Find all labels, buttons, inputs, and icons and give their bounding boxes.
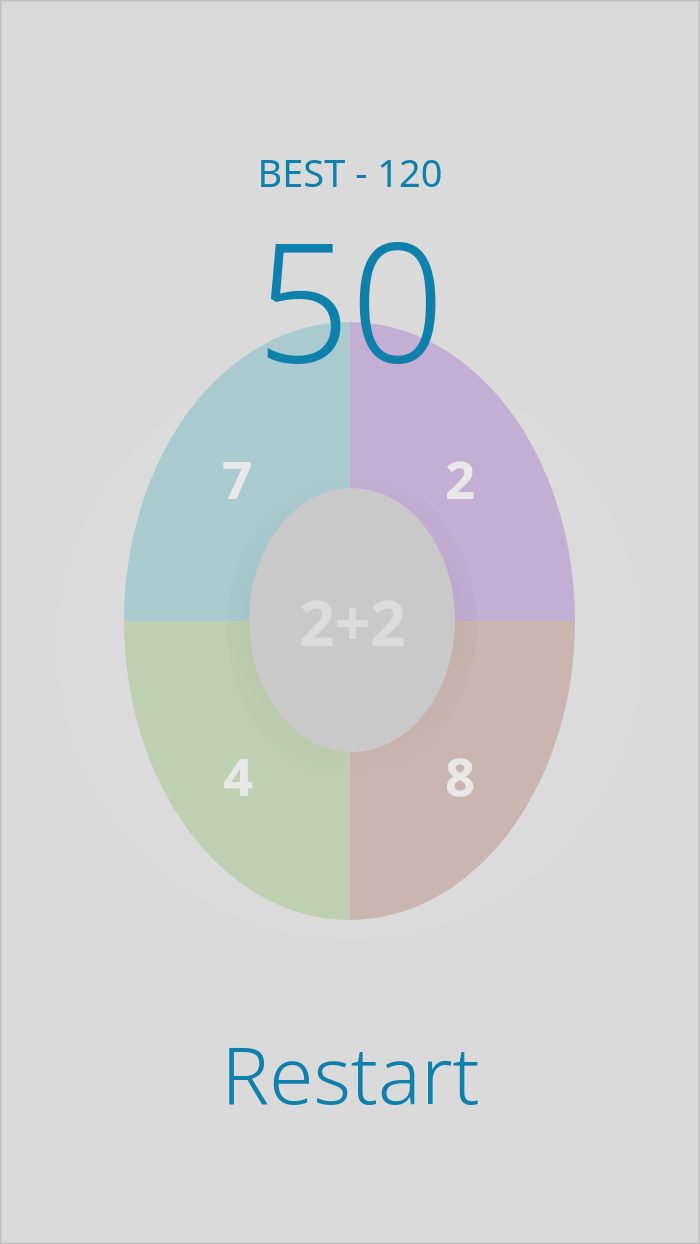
staticText: 2+2 [299, 580, 406, 660]
button[interactable]: Answer 7 [192, 433, 282, 523]
button[interactable]: Answer 2 [415, 433, 505, 523]
staticText: 50 [256, 186, 445, 411]
staticText: Restart [221, 1018, 480, 1127]
staticText: BEST - 120 [257, 146, 443, 198]
button[interactable]: Answer 8 [415, 730, 505, 820]
staticText: 4 [223, 740, 253, 811]
staticText: 7 [222, 443, 252, 514]
button[interactable]: Answer 4 [193, 730, 283, 820]
staticText: 2 [445, 443, 475, 514]
button[interactable]: Restart [197, 1012, 504, 1133]
staticText: 8 [445, 740, 475, 811]
